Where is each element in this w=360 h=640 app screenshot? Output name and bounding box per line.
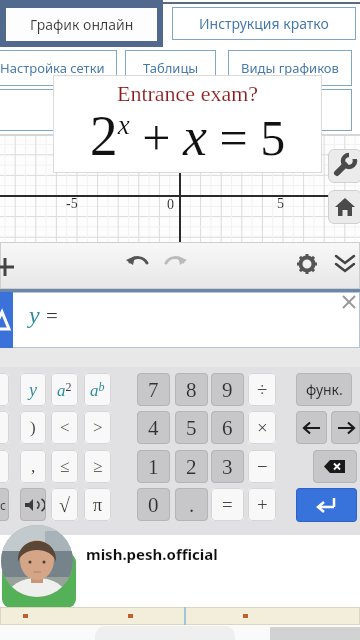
button[interactable] (1, 525, 73, 597)
button[interactable] (297, 254, 317, 274)
button[interactable]: График онлайн (6, 8, 157, 41)
button[interactable]: Таблицы (125, 50, 216, 86)
button[interactable]: = (211, 488, 244, 521)
button[interactable]: 3 (211, 450, 244, 483)
staticText: > (93, 418, 103, 437)
button[interactable]: . (175, 488, 208, 521)
button[interactable] (328, 190, 360, 224)
staticText: y (29, 302, 40, 329)
button[interactable]: 8 (175, 373, 208, 406)
button[interactable]: Настройка сетки (0, 50, 117, 86)
staticText: − (257, 456, 268, 477)
staticText: = (222, 494, 233, 515)
staticText: mish.pesh.official (86, 544, 218, 564)
staticText: y (29, 380, 37, 400)
staticText: Таблицы (143, 59, 199, 77)
staticText: 2 (186, 455, 197, 478)
button[interactable] (340, 293, 358, 311)
button[interactable]: √ (51, 488, 78, 521)
staticText: 4 (148, 416, 159, 439)
staticText: 9 (222, 378, 233, 401)
button[interactable]: < (51, 411, 78, 444)
button[interactable] (313, 450, 357, 483)
button[interactable]: π (84, 488, 111, 521)
staticText: × (257, 417, 268, 438)
staticText: 1 (148, 455, 159, 478)
button[interactable]: Инструкция кратко (172, 7, 356, 40)
button[interactable]: 9 (211, 373, 244, 406)
button[interactable]: x (0, 373, 9, 406)
staticText: 0 (148, 493, 159, 516)
button[interactable]: 7 (137, 373, 170, 406)
staticText: Инструкция кратко (199, 14, 329, 33)
button[interactable]: ( (0, 411, 9, 444)
button[interactable]: функ. (296, 373, 352, 406)
staticText: 5 (186, 416, 197, 439)
staticText: -5 (66, 196, 78, 212)
button[interactable] (328, 149, 360, 183)
button[interactable]: 6 (211, 411, 244, 444)
staticText: ab (90, 380, 105, 400)
button[interactable]: − (248, 450, 276, 483)
staticText: a2 (57, 380, 72, 400)
staticText: 5 (277, 196, 284, 212)
staticText: = (46, 304, 58, 327)
staticText: + (257, 494, 268, 515)
button[interactable] (163, 252, 187, 274)
button[interactable]: ) (20, 411, 46, 444)
staticText: Entrance exam? (53, 81, 322, 105)
button[interactable]: + (248, 488, 276, 521)
button[interactable] (334, 254, 356, 274)
button[interactable]: Виды графиков (228, 50, 352, 86)
staticText: , (31, 457, 36, 476)
button[interactable]: 0 (137, 488, 170, 521)
staticText: ≥ (93, 457, 103, 476)
button[interactable]: abc (0, 488, 9, 521)
staticText: 8 (186, 378, 197, 401)
staticText: . (189, 493, 195, 516)
button[interactable]: , (20, 450, 46, 483)
staticText: √ (59, 494, 70, 516)
staticText: Настройка сетки (0, 59, 105, 77)
button[interactable]: | (0, 450, 9, 483)
button[interactable]: ≤ (51, 450, 78, 483)
staticText: ≤ (60, 457, 70, 476)
button[interactable] (296, 411, 327, 444)
staticText: ÷ (257, 379, 268, 400)
staticText: функ. (306, 380, 343, 399)
staticText: ) (30, 418, 36, 437)
button[interactable]: ab (84, 373, 111, 406)
staticText: 2x + x = 5 (53, 105, 322, 167)
button[interactable]: 2 (175, 450, 208, 483)
button[interactable] (296, 488, 357, 522)
staticText: < (60, 418, 70, 437)
button[interactable]: 5 (175, 411, 208, 444)
button[interactable]: × (248, 411, 276, 444)
button[interactable] (20, 488, 46, 521)
button[interactable]: 1 (137, 450, 170, 483)
staticText: π (93, 495, 103, 515)
staticText: 0 (167, 197, 174, 213)
staticText: 6 (222, 416, 233, 439)
button[interactable] (331, 411, 360, 444)
button[interactable]: a2 (51, 373, 78, 406)
staticText: Виды графиков (241, 59, 339, 77)
button[interactable] (126, 252, 150, 274)
staticText: 3 (222, 455, 233, 478)
button[interactable]: 4 (137, 411, 170, 444)
button[interactable]: y (20, 373, 46, 406)
staticText: 7 (148, 378, 159, 401)
staticText: abc (0, 497, 6, 513)
button[interactable]: ÷ (248, 373, 276, 406)
staticText: График онлайн (30, 15, 134, 34)
button[interactable]: > (84, 411, 111, 444)
button[interactable]: ≥ (84, 450, 111, 483)
